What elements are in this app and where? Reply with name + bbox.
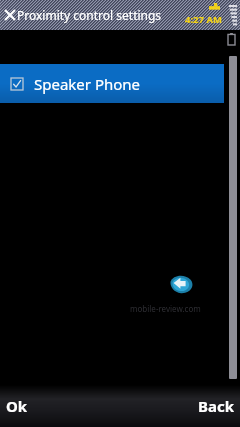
button[interactable]: Close	[1, 6, 19, 24]
button[interactable]: Ok	[0, 385, 70, 427]
staticText: Speaker Phone	[34, 74, 141, 94]
staticText: 4:27 AM	[185, 13, 222, 26]
button[interactable]: Speaker Phone	[0, 64, 224, 103]
button[interactable]: Back	[160, 385, 240, 427]
staticText: Ok	[6, 396, 28, 416]
staticText: mobile-review.com	[130, 303, 201, 314]
staticText: Back	[197, 396, 234, 416]
staticText: Proximity control settings	[17, 7, 162, 23]
